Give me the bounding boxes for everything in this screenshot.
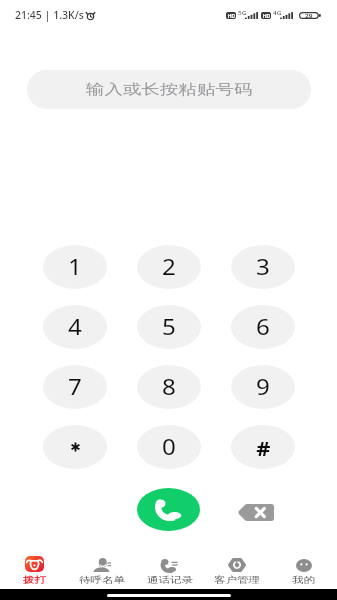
button[interactable]: 0: [137, 425, 201, 469]
staticText: 29: [305, 13, 313, 18]
button[interactable]: Call: [137, 488, 200, 531]
staticText: 5: [162, 313, 177, 342]
staticText: 2: [162, 253, 177, 282]
button[interactable]: 客户管理: [203, 553, 270, 585]
button[interactable]: Delete: [228, 494, 283, 530]
staticText: 9: [256, 373, 271, 402]
button[interactable]: 1: [43, 245, 107, 289]
button[interactable]: 5: [137, 305, 201, 349]
staticText: 8: [162, 373, 177, 402]
staticText: #: [256, 435, 271, 462]
staticText: 5G: [238, 9, 247, 16]
staticText: HD: [228, 13, 235, 18]
staticText: 21:45 | 1.3K/s: [15, 8, 84, 22]
staticText: 我的: [292, 574, 315, 584]
staticText: 7: [68, 373, 83, 402]
staticText: 通话记录: [147, 574, 193, 584]
button[interactable]: 拨打: [0, 553, 68, 585]
button[interactable]: 7: [43, 365, 107, 409]
button[interactable]: #: [231, 425, 295, 469]
button[interactable]: 我的: [270, 553, 337, 585]
staticText: 0: [162, 433, 177, 462]
staticText: 4: [68, 313, 83, 342]
staticText: 输入或长按粘贴号码: [86, 81, 253, 98]
button[interactable]: 9: [231, 365, 295, 409]
button[interactable]: 6: [231, 305, 295, 349]
staticText: 客户管理: [214, 574, 260, 584]
button[interactable]: 通话记录: [136, 553, 203, 585]
staticText: HD: [263, 13, 270, 18]
button[interactable]: 4: [43, 305, 107, 349]
staticText: 3: [256, 253, 271, 282]
staticText: 4G: [273, 9, 282, 16]
staticText: 拨打: [23, 574, 46, 584]
staticText: 待呼名单: [79, 574, 125, 584]
staticText: 6: [256, 313, 271, 342]
button[interactable]: 8: [137, 365, 201, 409]
button[interactable]: [43, 425, 107, 469]
staticText: 1: [68, 253, 83, 282]
button[interactable]: 输入或长按粘贴号码: [27, 70, 311, 109]
button[interactable]: 3: [231, 245, 295, 289]
button[interactable]: 待呼名单: [68, 553, 136, 585]
button[interactable]: 2: [137, 245, 201, 289]
